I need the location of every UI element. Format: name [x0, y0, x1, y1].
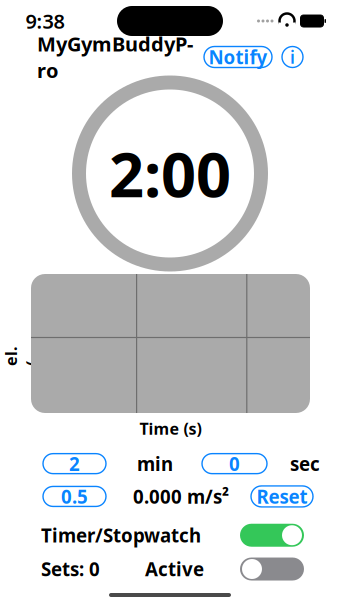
staticText: Timer/Stopwatch: [41, 523, 201, 548]
staticText: 9:38: [25, 8, 64, 34]
button[interactable]: Reset: [251, 486, 313, 507]
staticText: Active: [145, 557, 204, 581]
staticText: 0.000 m/s²: [133, 484, 229, 509]
staticText: Accel. (m/s²): [12, 272, 31, 442]
button[interactable]: 0.5: [43, 486, 106, 506]
staticText: i: [290, 45, 295, 68]
staticText: Notify: [208, 45, 267, 69]
staticText: MyGymBuddyPro: [37, 30, 193, 83]
button[interactable]: Active toggle: [240, 557, 304, 580]
button[interactable]: Info: [282, 46, 303, 67]
staticText: Time (s): [139, 418, 201, 439]
staticText: 2: [69, 451, 80, 476]
staticText: 0: [229, 451, 240, 476]
button[interactable]: 0: [202, 454, 267, 474]
staticText: 2:00: [109, 133, 231, 214]
button[interactable]: Notify: [204, 46, 272, 67]
staticText: 0.5: [61, 484, 88, 509]
staticText: Sets: 0: [41, 557, 100, 581]
button[interactable]: Timer Stopwatch toggle: [240, 524, 304, 547]
staticText: min: [137, 451, 173, 476]
staticText: Reset: [256, 484, 307, 509]
button[interactable]: 2: [43, 454, 106, 474]
staticText: sec: [290, 451, 320, 476]
